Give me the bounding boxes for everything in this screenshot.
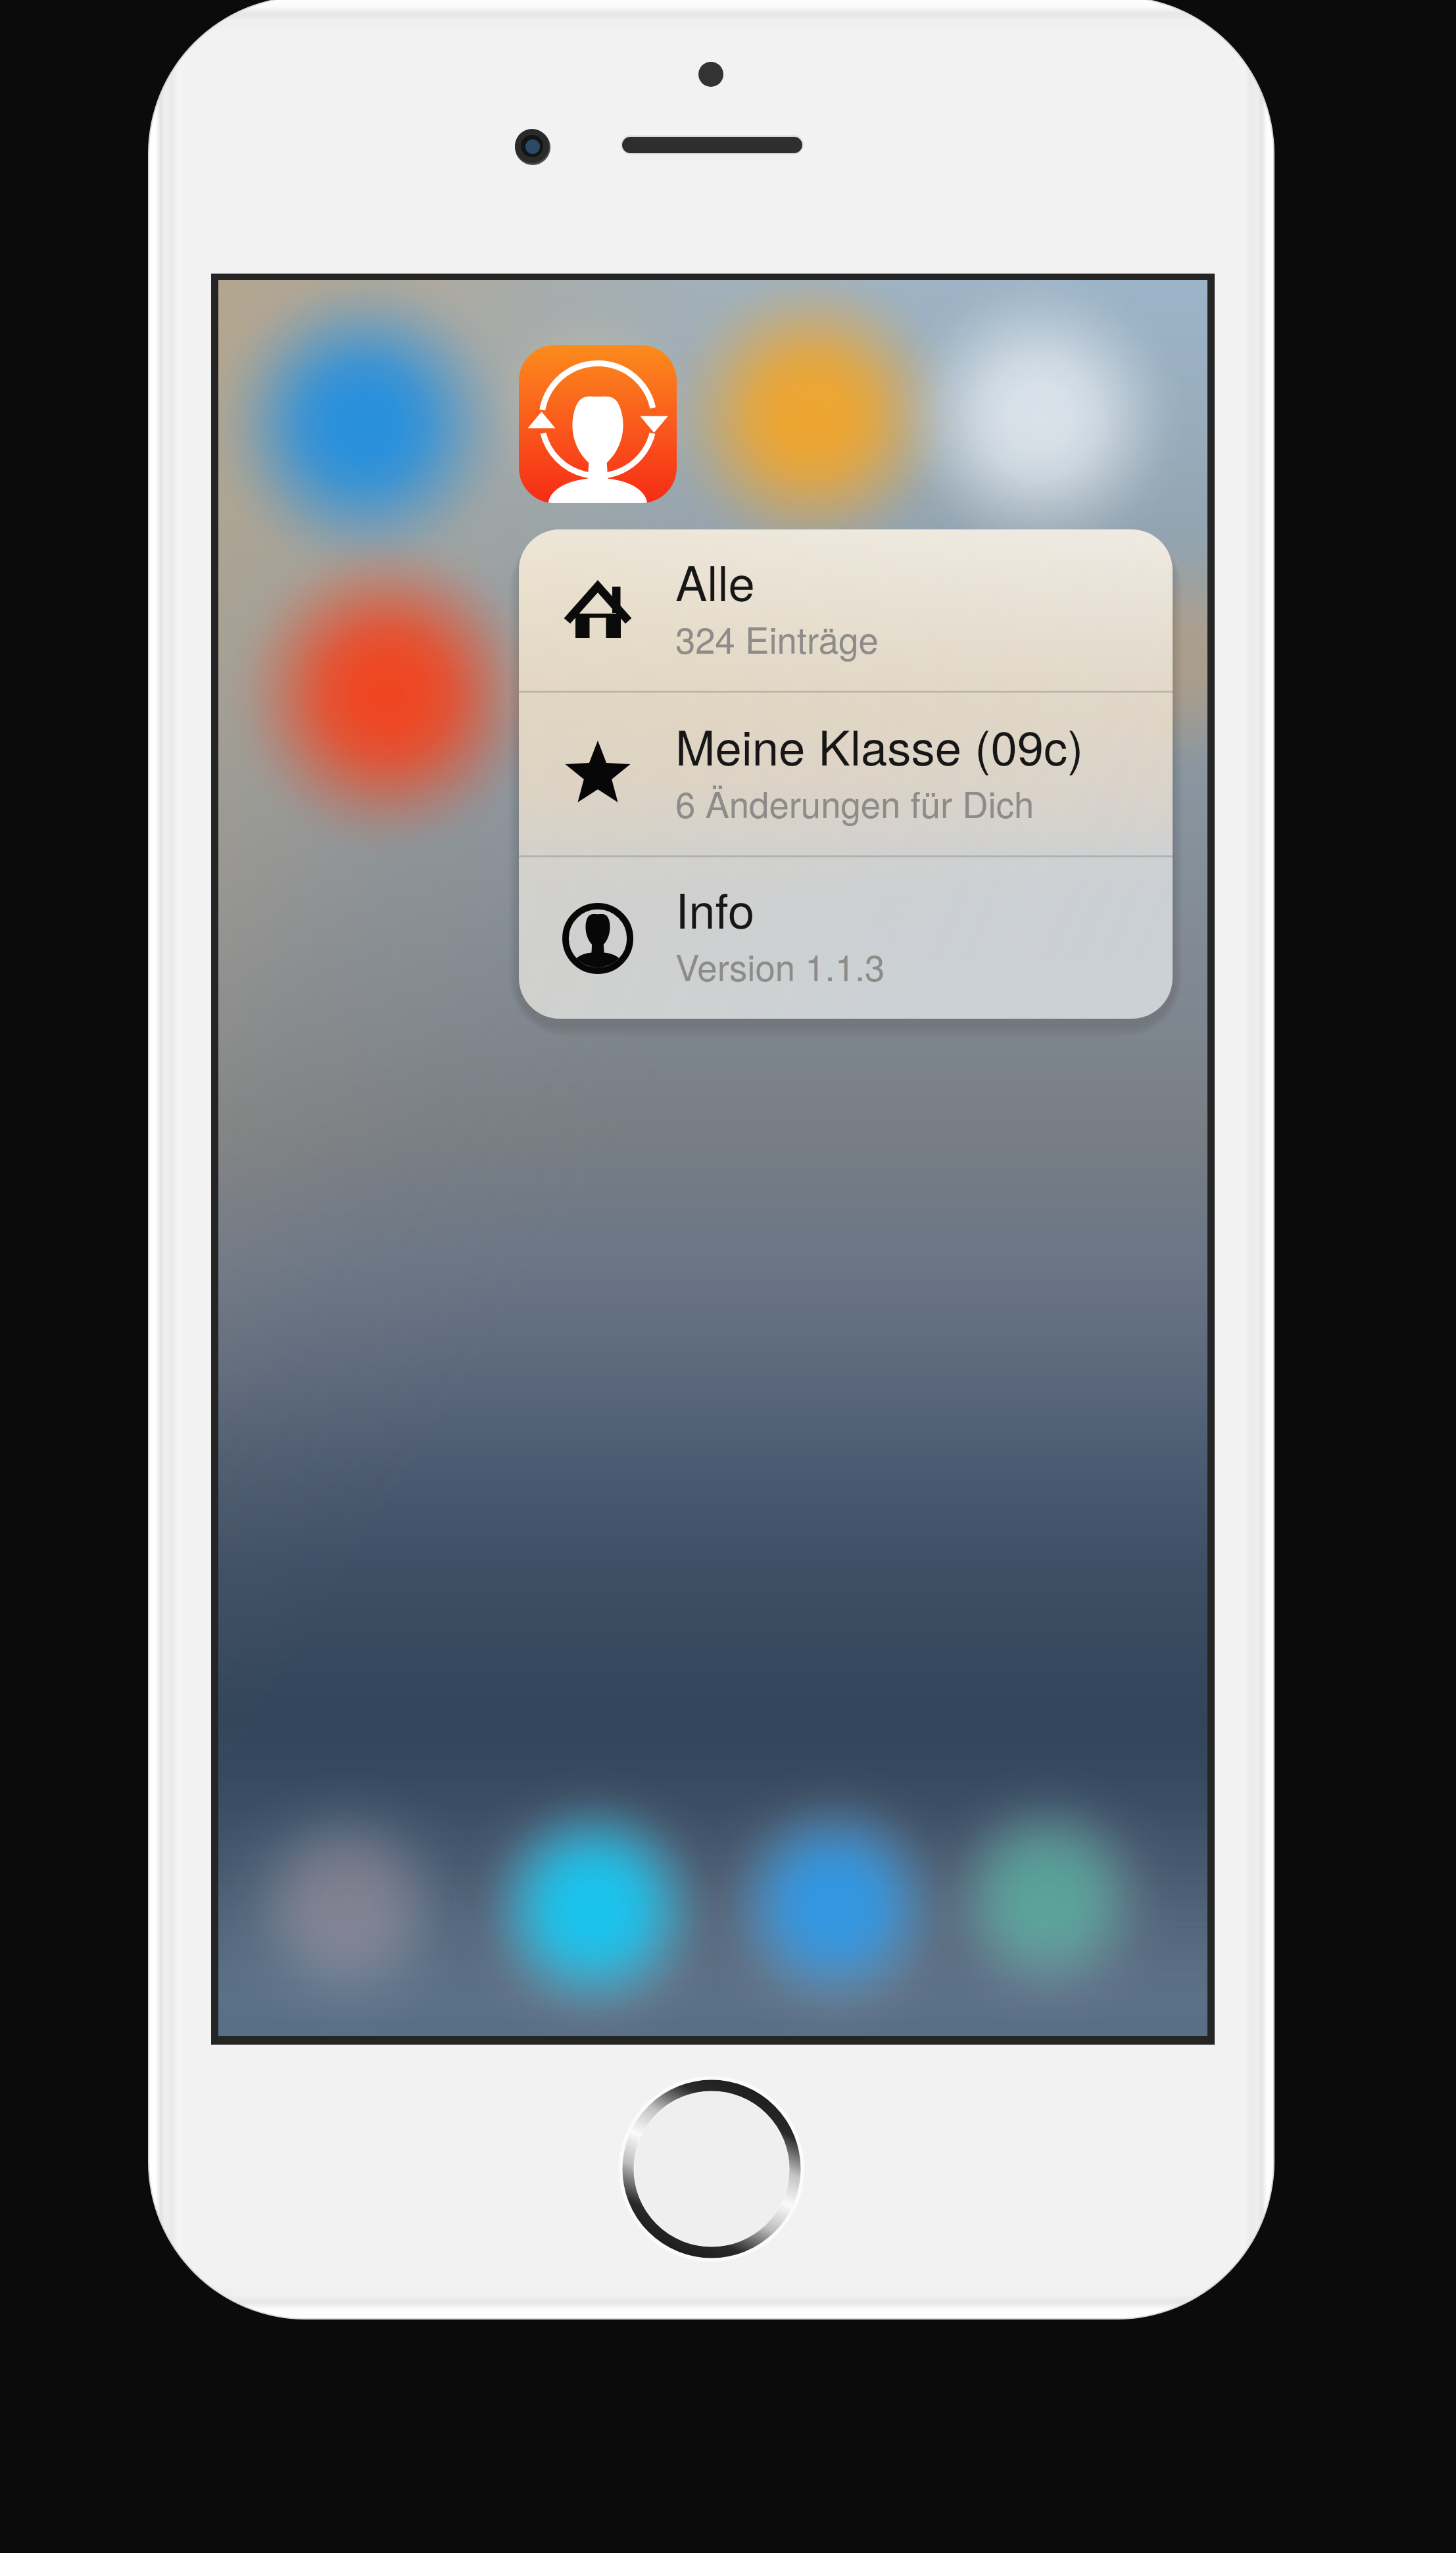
button[interactable]: Kontakte Sync App öffnen: [519, 345, 677, 503]
staticText: Alle: [675, 547, 755, 615]
button[interactable]: Meine Klasse (09c): [519, 692, 1173, 856]
button[interactable]: Info: [519, 856, 1173, 1019]
staticText: 6 Änderungen für Dich: [675, 777, 1034, 828]
staticText: Meine Klasse (09c): [675, 711, 1084, 779]
button[interactable]: Alle: [519, 529, 1173, 692]
button[interactable]: Home: [619, 2077, 804, 2261]
staticText: Info: [675, 874, 755, 942]
staticText: 324 Einträge: [675, 612, 879, 664]
staticText: Version 1.1.3: [675, 940, 885, 991]
